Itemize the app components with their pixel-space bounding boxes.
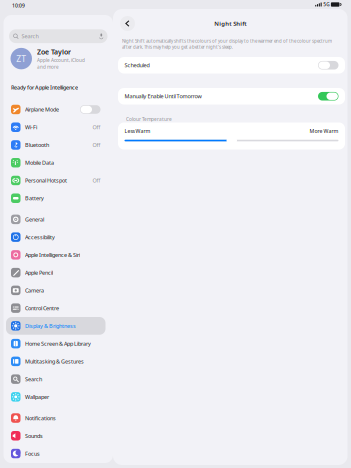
button[interactable]: Apple Intelligence & Siri bbox=[3, 246, 113, 264]
staticText: Sounds bbox=[25, 432, 43, 439]
staticText: Colour Temperature bbox=[126, 116, 172, 122]
button[interactable]: Home Screen & App Library bbox=[3, 335, 113, 353]
staticText: Apple Intelligence & Siri bbox=[25, 251, 80, 259]
staticText: Manually Enable Until Tomorrow bbox=[124, 92, 201, 100]
button[interactable]: Apple Pencil bbox=[3, 264, 113, 282]
staticText: Wallpaper bbox=[25, 393, 49, 401]
staticText: 10:09 bbox=[12, 2, 25, 9]
staticText: Notifications bbox=[25, 414, 56, 422]
button[interactable]: Off bbox=[318, 61, 338, 70]
button[interactable]: Search bbox=[3, 370, 113, 388]
staticText: Off bbox=[92, 141, 100, 149]
staticText: Mobile Data bbox=[25, 159, 54, 166]
button[interactable]: Focus bbox=[3, 445, 113, 462]
staticText: Less Warm bbox=[124, 127, 150, 135]
staticText: Camera bbox=[25, 287, 44, 294]
button[interactable]: Back bbox=[120, 16, 135, 31]
staticText: Bluetooth bbox=[25, 141, 49, 149]
staticText: Accessibility bbox=[25, 233, 55, 241]
staticText: Off bbox=[92, 123, 100, 131]
button[interactable]: ZT bbox=[3, 43, 113, 74]
staticText: Multitasking & Gestures bbox=[25, 358, 84, 365]
staticText: Wi-Fi bbox=[25, 123, 37, 131]
button[interactable]: Mobile Data bbox=[3, 154, 113, 172]
staticText: Apple Pencil bbox=[25, 269, 53, 276]
staticText: Focus bbox=[25, 450, 40, 457]
staticText: Search bbox=[25, 375, 42, 383]
staticText: and more bbox=[37, 64, 59, 70]
staticText: General bbox=[25, 216, 44, 223]
button[interactable]: Multitasking & Gestures bbox=[3, 352, 113, 370]
staticText: Zoe Taylor bbox=[37, 47, 71, 56]
staticText: Off bbox=[92, 177, 100, 184]
button[interactable]: Control Centre bbox=[3, 299, 113, 317]
button[interactable]: Personal Hotspot bbox=[3, 172, 113, 189]
button[interactable]: General bbox=[3, 210, 113, 228]
button[interactable]: Notifications bbox=[3, 409, 113, 427]
button[interactable]: Display & Brightness bbox=[3, 317, 113, 335]
staticText: Scheduled bbox=[124, 61, 149, 69]
staticText: Apple Account, iCloud bbox=[37, 57, 85, 63]
staticText: ZT bbox=[16, 53, 26, 64]
staticText: Control Centre bbox=[25, 304, 59, 312]
staticText: Night Shift automatically shifts the col… bbox=[122, 38, 332, 50]
staticText: Battery bbox=[25, 194, 44, 202]
staticText: Home Screen & App Library bbox=[25, 340, 91, 347]
button[interactable]: Wallpaper bbox=[3, 388, 113, 406]
staticText: 5G bbox=[323, 1, 329, 8]
staticText: Search bbox=[22, 32, 39, 40]
button[interactable]: Camera bbox=[3, 281, 113, 299]
staticText: Personal Hotspot bbox=[25, 177, 67, 184]
staticText: Airplane Mode bbox=[25, 106, 59, 113]
staticText: More Warm bbox=[309, 127, 338, 135]
button[interactable]: Accessibility bbox=[3, 228, 113, 246]
button[interactable]: Off bbox=[80, 105, 100, 114]
staticText: Display & Brightness bbox=[25, 322, 76, 330]
staticText: Ready for Apple Intelligence bbox=[11, 84, 78, 91]
button[interactable]: Battery bbox=[3, 189, 113, 207]
button[interactable]: Sounds bbox=[3, 427, 113, 445]
button[interactable]: On bbox=[318, 92, 338, 101]
button[interactable]: Wi-Fi bbox=[3, 118, 113, 136]
button[interactable]: Bluetooth bbox=[3, 136, 113, 154]
staticText: Night Shift bbox=[214, 19, 246, 27]
button[interactable]: Airplane Mode bbox=[3, 101, 113, 118]
